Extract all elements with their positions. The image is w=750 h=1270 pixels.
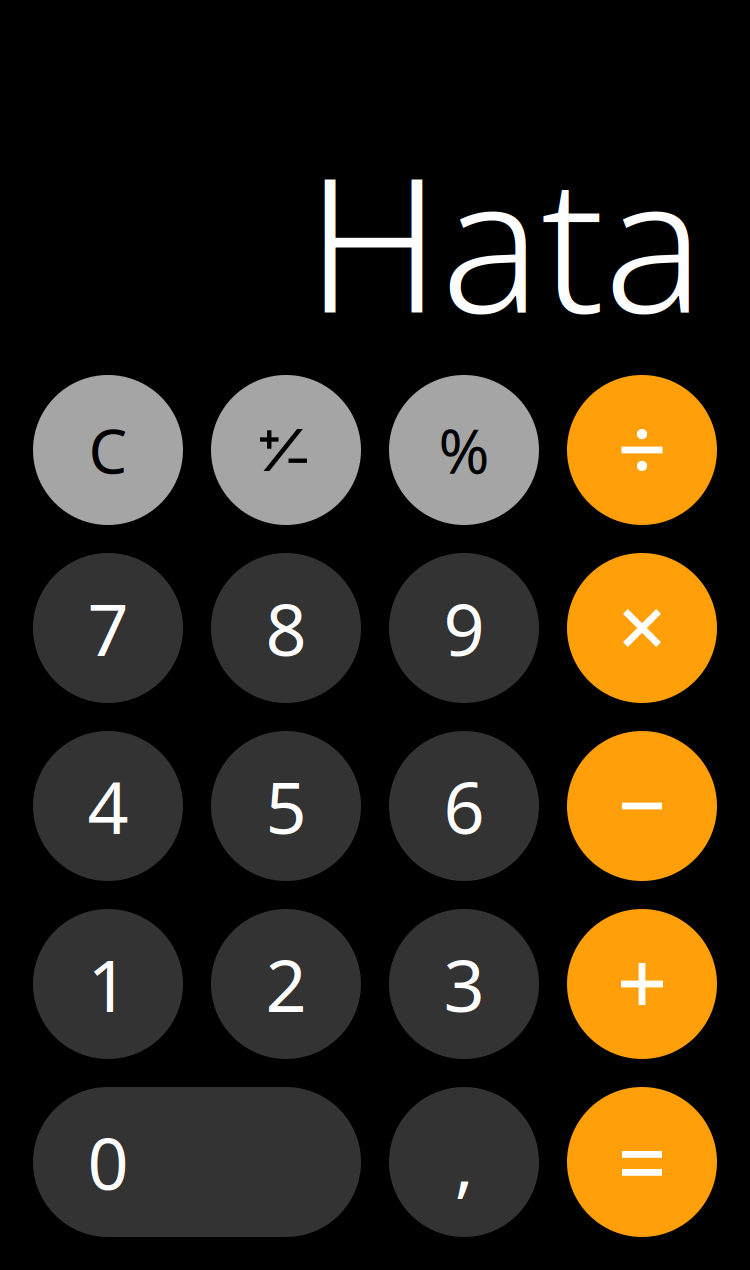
button[interactable]: C bbox=[33, 375, 183, 525]
button[interactable]: 1 bbox=[33, 909, 183, 1059]
button[interactable]: Minus bbox=[567, 731, 717, 881]
button[interactable]: 4 bbox=[33, 731, 183, 881]
button[interactable]: 6 bbox=[389, 731, 539, 881]
button[interactable]: Divide bbox=[567, 375, 717, 525]
button[interactable]: 3 bbox=[389, 909, 539, 1059]
button[interactable]: Multiply bbox=[567, 553, 717, 703]
button[interactable]: , bbox=[389, 1087, 539, 1237]
button[interactable]: 2 bbox=[211, 909, 361, 1059]
staticText: % bbox=[438, 409, 489, 491]
button[interactable]: Equals bbox=[567, 1087, 717, 1237]
button[interactable]: 9 bbox=[389, 553, 539, 703]
staticText: 0 bbox=[87, 1114, 128, 1210]
staticText: 9 bbox=[443, 580, 484, 676]
staticText: 3 bbox=[443, 936, 484, 1032]
staticText: 4 bbox=[87, 758, 128, 854]
button[interactable]: 8 bbox=[211, 553, 361, 703]
staticText: 5 bbox=[265, 758, 306, 854]
staticText: C bbox=[88, 409, 127, 491]
staticText: 8 bbox=[265, 580, 306, 676]
staticText: Hata bbox=[306, 116, 704, 364]
button[interactable]: Plus minus bbox=[211, 375, 361, 525]
staticText: 6 bbox=[443, 758, 484, 854]
staticText: 7 bbox=[87, 580, 128, 676]
button[interactable]: Plus bbox=[567, 909, 717, 1059]
staticText: 1 bbox=[87, 936, 128, 1032]
staticText: , bbox=[454, 1114, 473, 1210]
staticText: 2 bbox=[265, 936, 306, 1032]
button[interactable]: 7 bbox=[33, 553, 183, 703]
button[interactable]: 0 bbox=[33, 1087, 361, 1237]
button[interactable]: 5 bbox=[211, 731, 361, 881]
button[interactable]: % bbox=[389, 375, 539, 525]
